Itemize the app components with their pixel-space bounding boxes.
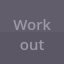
staticText: Workout — [10, 14, 54, 54]
